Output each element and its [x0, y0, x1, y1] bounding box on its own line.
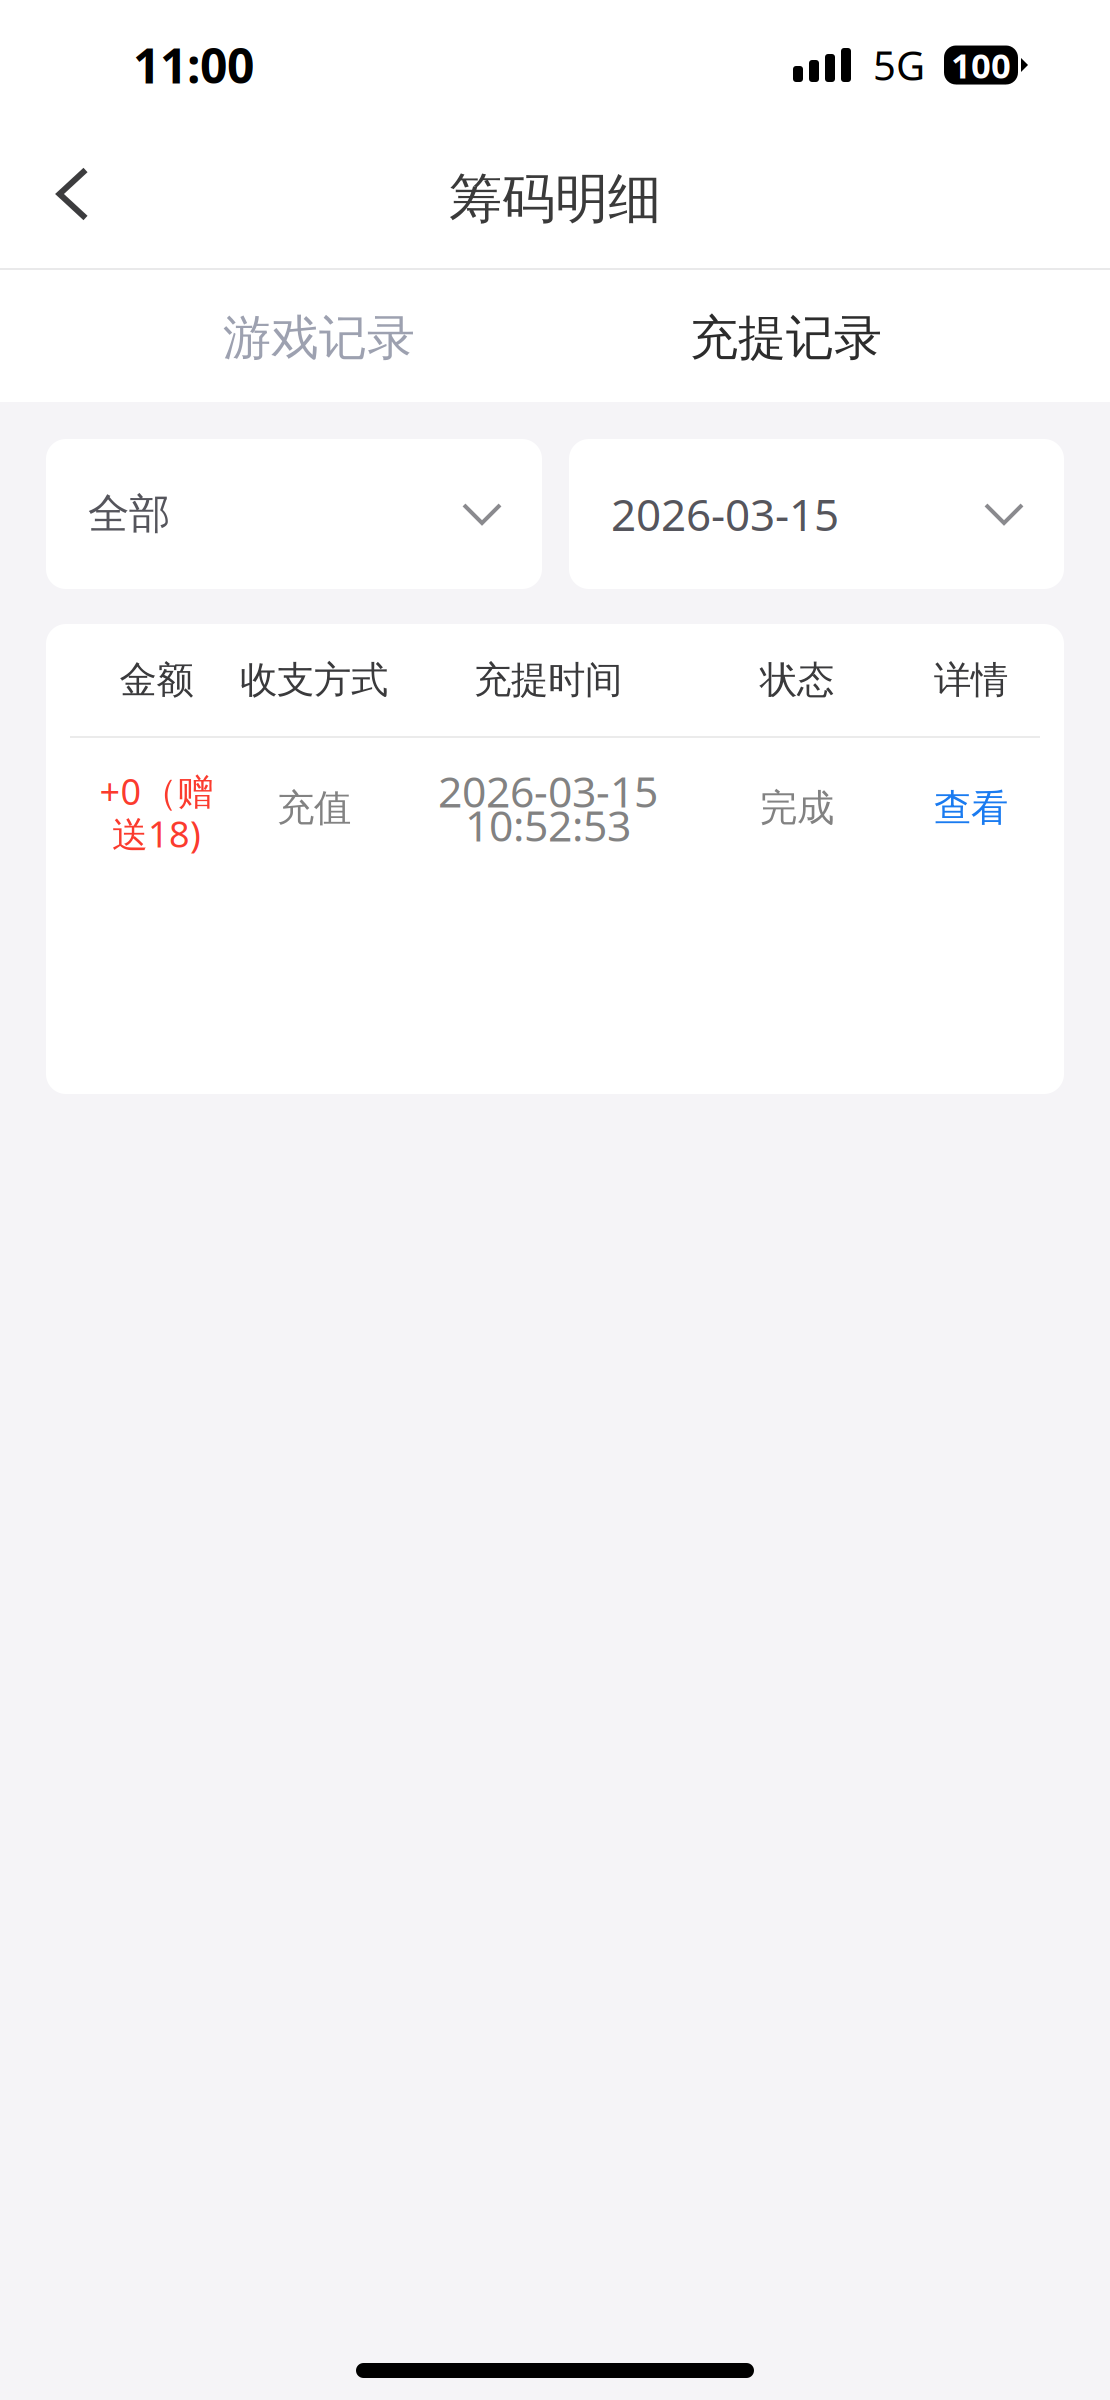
staticText: 充值	[277, 784, 351, 831]
button[interactable]: 查看	[871, 738, 1071, 878]
staticText: 游戏记录	[223, 308, 415, 368]
staticText: 金额	[119, 656, 193, 703]
staticText: 5G	[873, 38, 925, 92]
staticText: 11:00	[133, 32, 254, 98]
staticText: 充提记录	[690, 308, 882, 368]
staticText: 100	[951, 41, 1011, 89]
button[interactable]: 全部	[46, 439, 542, 589]
staticText: 状态	[760, 656, 834, 703]
staticText: 查看	[934, 784, 1008, 831]
staticText: 10:52:53	[465, 796, 631, 854]
button[interactable]: 充提记录	[636, 270, 934, 402]
staticText: 详情	[934, 656, 1008, 703]
staticText: 筹码明细	[449, 165, 661, 233]
button[interactable]: 2026-03-15	[569, 439, 1064, 589]
staticText: 完成	[760, 784, 834, 831]
staticText: +0（赠	[99, 766, 213, 815]
staticText: 全部	[88, 488, 170, 540]
staticText: 充提时间	[474, 656, 622, 703]
staticText: 送18)	[112, 809, 201, 858]
staticText: 2026-03-15	[611, 484, 839, 544]
staticText: 2026-03-15	[438, 762, 658, 820]
button[interactable]: 游戏记录	[0, 270, 636, 402]
button[interactable]: Back	[0, 130, 141, 268]
staticText: 收支方式	[240, 656, 388, 703]
